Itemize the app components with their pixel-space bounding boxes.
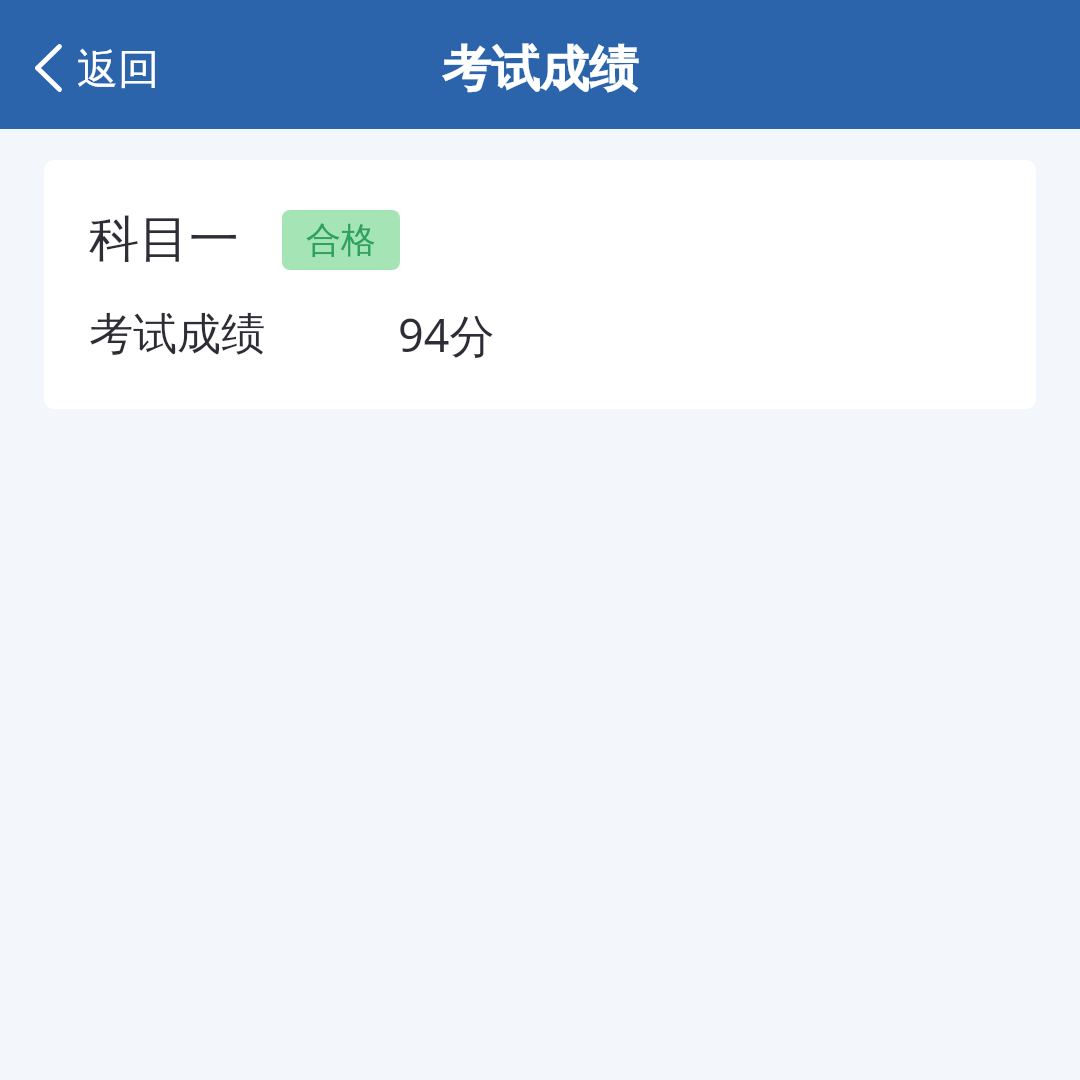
staticText: 94分 <box>398 304 495 365</box>
staticText: 合格 <box>306 218 376 262</box>
staticText: 科目一 <box>89 208 239 271</box>
staticText: 考试成绩 <box>89 307 265 362</box>
button[interactable]: 合格 <box>282 210 400 270</box>
button[interactable]: 返回 <box>0 34 175 106</box>
staticText: 返回 <box>77 44 159 96</box>
button[interactable]: 科目一 <box>44 160 1036 409</box>
staticText: 考试成绩 <box>442 39 638 101</box>
